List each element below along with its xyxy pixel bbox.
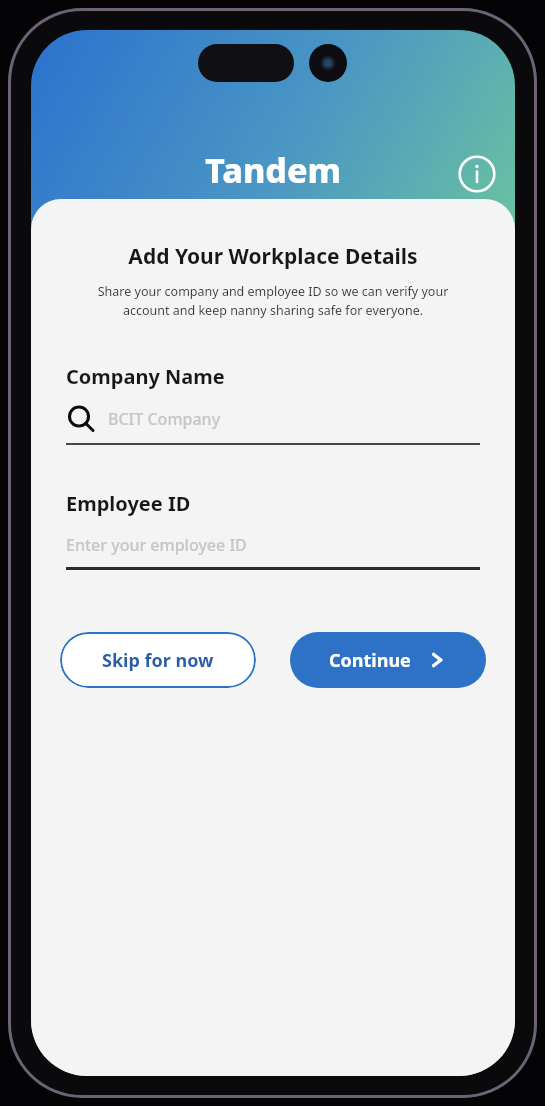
button[interactable]: BCIT Company — [66, 404, 480, 434]
staticText: Share your company and employee ID so we… — [57, 283, 489, 319]
staticText: Enter your employee ID — [66, 534, 247, 556]
staticText: Company Name — [66, 363, 225, 390]
button[interactable]: Information — [457, 154, 497, 194]
staticText: Tandem — [205, 147, 342, 193]
staticText: Continue — [329, 648, 411, 673]
button[interactable]: Continue — [290, 632, 486, 688]
staticText: Add Your Workplace Details — [31, 242, 515, 271]
staticText: Skip for now — [102, 648, 214, 673]
button[interactable]: Enter your employee ID — [66, 534, 480, 556]
staticText: Employee ID — [66, 490, 191, 517]
staticText: BCIT Company — [108, 408, 221, 430]
button[interactable]: Skip for now — [60, 632, 256, 688]
